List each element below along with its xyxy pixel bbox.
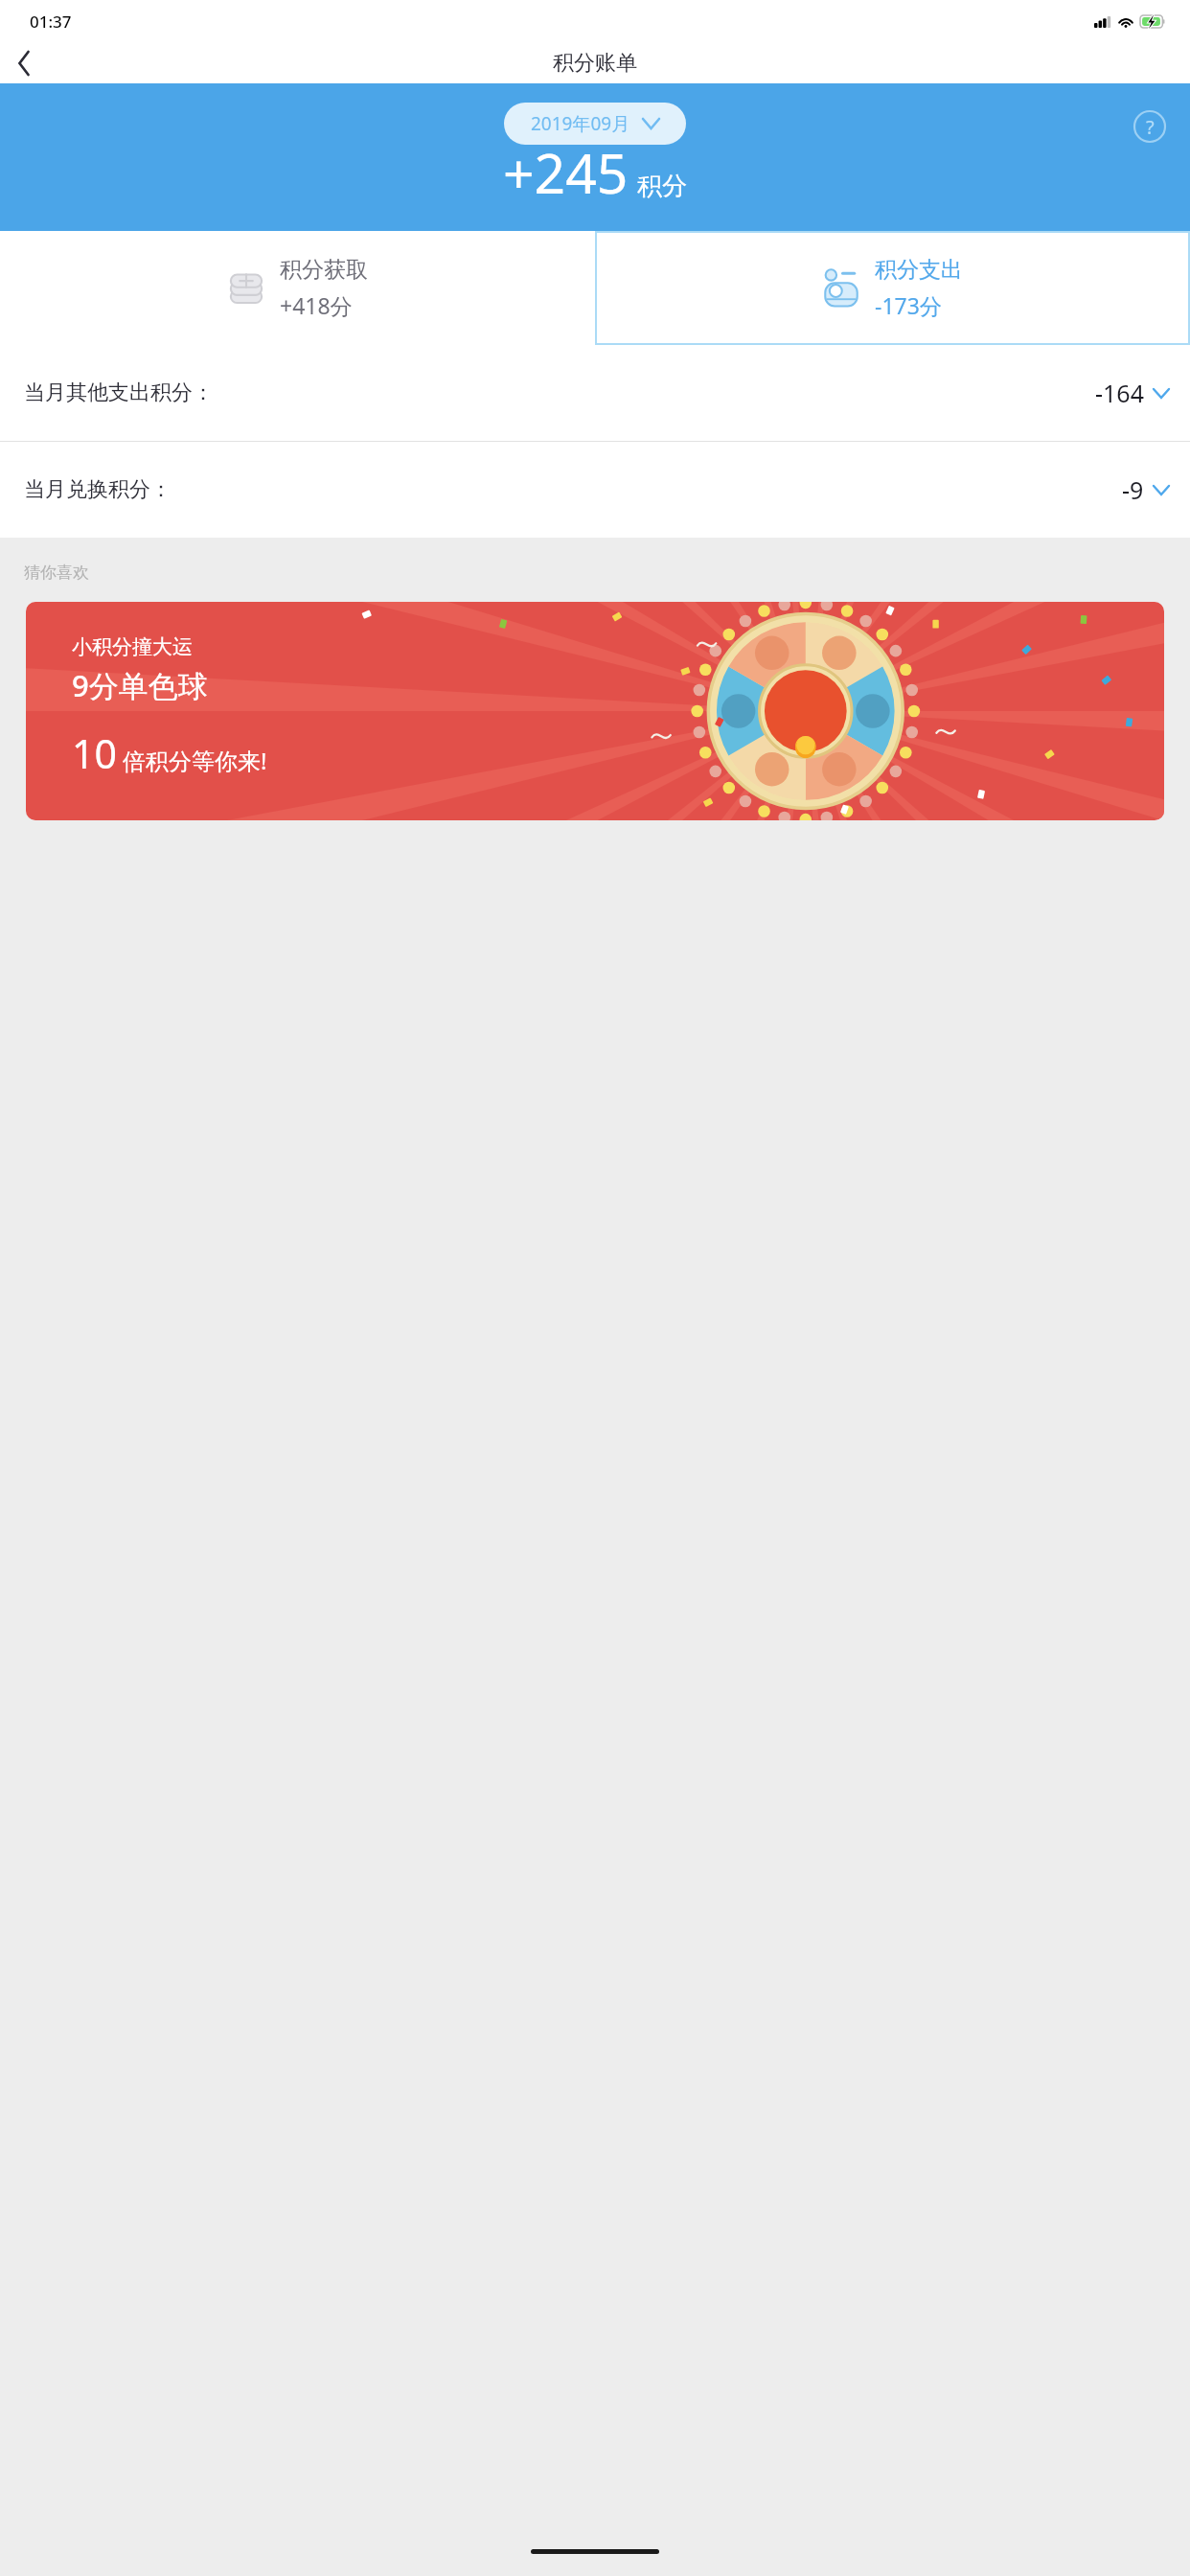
staticText: 积分获取 — [280, 256, 368, 284]
button[interactable]: 积分支出 — [595, 231, 1190, 345]
staticText: 积分 — [637, 171, 687, 202]
button[interactable]: 小积分撞大运 — [26, 602, 1164, 820]
staticText: 当月兑换积分： — [24, 476, 172, 503]
button[interactable]: 积分获取 — [0, 231, 595, 345]
staticText: 10 — [72, 726, 117, 780]
staticText: 2019年09月 — [531, 111, 630, 136]
button[interactable]: 当月兑换积分： — [0, 442, 1190, 538]
staticText: 当月其他支出积分： — [24, 379, 214, 406]
staticText: ? — [1146, 114, 1155, 140]
staticText: 9分单色球 — [72, 665, 208, 705]
button[interactable]: 帮助 — [1133, 110, 1166, 143]
staticText: 积分账单 — [553, 50, 637, 77]
button[interactable]: 返回 — [0, 42, 48, 83]
staticText: 猜你喜欢 — [24, 563, 89, 583]
staticText: -173分 — [875, 290, 942, 320]
staticText: 积分支出 — [875, 256, 963, 284]
staticText: 01:37 — [30, 11, 72, 33]
staticText: +418分 — [280, 290, 353, 320]
button[interactable]: 当月其他支出积分： — [0, 345, 1190, 441]
staticText: -164 — [1095, 377, 1144, 409]
staticText: -9 — [1122, 473, 1144, 506]
button[interactable]: 2019年09月 — [504, 103, 686, 145]
staticText: +245 — [503, 135, 629, 210]
staticText: 倍积分等你来! — [123, 745, 267, 776]
staticText: 小积分撞大运 — [72, 634, 193, 659]
